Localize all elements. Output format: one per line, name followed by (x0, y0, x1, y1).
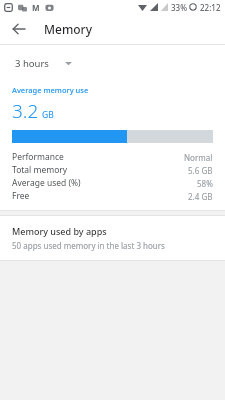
staticText: Average used (%) (12, 177, 81, 189)
staticText: 33% (171, 2, 187, 13)
staticText: 3.2 (12, 98, 39, 124)
staticText: M (32, 2, 40, 13)
staticText: 22:12 (200, 2, 221, 13)
staticText: 2.4 GB (188, 191, 213, 202)
staticText: 58% (197, 178, 213, 189)
staticText: Memory (44, 21, 93, 37)
staticText: Total memory (12, 164, 68, 176)
button[interactable]: 3 hours (8, 52, 79, 75)
button[interactable]: Memory used by apps (0, 216, 225, 260)
staticText: GB (42, 109, 54, 121)
staticText: 50 apps used memory in the last 3 hours (12, 240, 165, 251)
staticText: Performance (12, 151, 64, 163)
button[interactable]: Back (8, 18, 30, 40)
staticText: 3 hours (15, 57, 49, 70)
staticText: Free (12, 190, 30, 202)
staticText: Average memory use (12, 85, 89, 95)
staticText: Normal (184, 152, 213, 163)
staticText: Memory used by apps (12, 225, 107, 237)
staticText: 5.6 GB (188, 165, 213, 176)
